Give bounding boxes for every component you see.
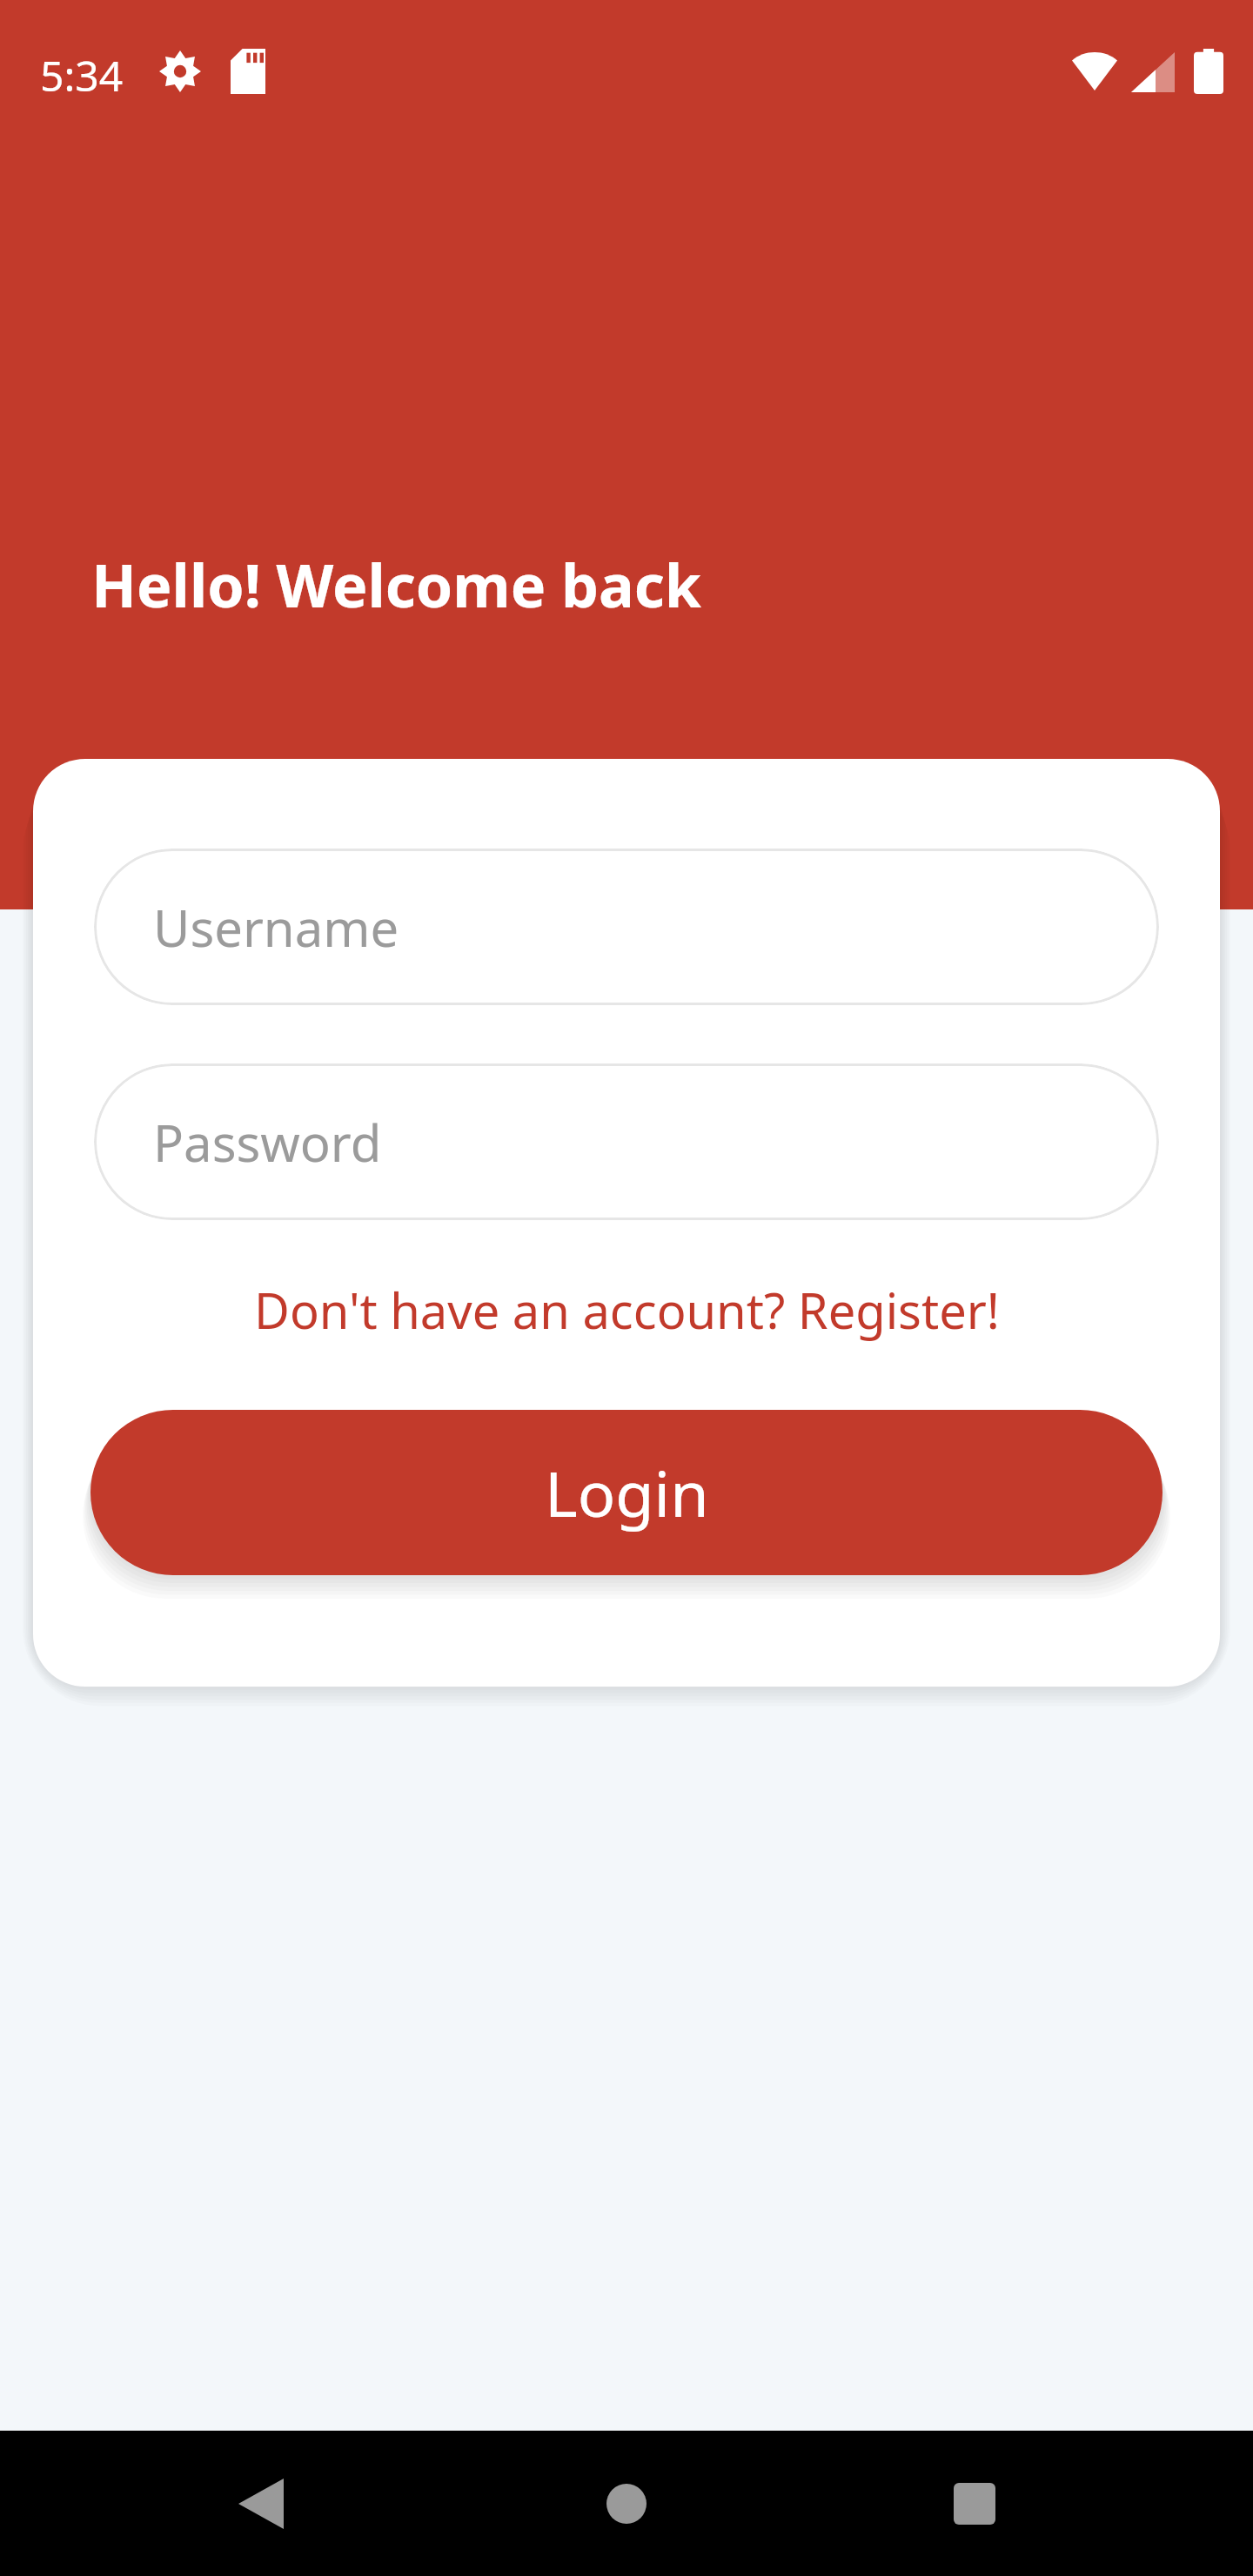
button[interactable]: Home — [574, 2452, 679, 2556]
staticText: Login — [545, 1450, 709, 1535]
staticText: Hello! Welcome back — [91, 544, 701, 625]
button[interactable]: Login — [90, 1410, 1163, 1575]
staticText: Don't have an account? Register! — [254, 1277, 1000, 1343]
button[interactable]: Recent apps — [922, 2452, 1027, 2556]
button[interactable]: Username — [94, 849, 1159, 1005]
staticText: 5:34 — [40, 47, 124, 104]
staticText: Username — [153, 893, 399, 962]
button[interactable]: Back — [209, 2452, 313, 2556]
button[interactable]: Password — [94, 1063, 1159, 1220]
staticText: Password — [153, 1108, 382, 1177]
button[interactable]: Don't have an account? Register! — [33, 1271, 1220, 1349]
